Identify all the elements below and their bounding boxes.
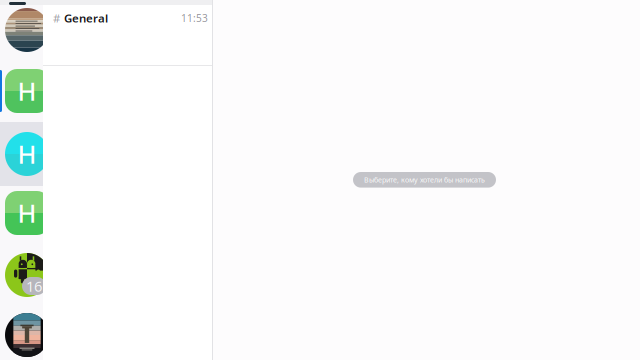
button[interactable]: Workspace H, selected [0,0,49,360]
staticText: 11:53 [181,11,208,25]
staticText: H [17,74,36,108]
staticText: H [17,137,36,171]
staticText: 16 [26,276,42,296]
button[interactable]: # [43,0,213,60]
button[interactable]: Workspace H green [0,0,49,360]
button[interactable]: Workspace H cyan [0,0,49,360]
button[interactable]: Android chat, 16 unread [0,0,49,360]
staticText: H [17,196,36,230]
button[interactable]: Saved messages account [0,0,49,360]
staticText: General [64,10,108,26]
button[interactable]: Account photo [0,0,49,360]
staticText: Выберите, кому хотели бы написать [364,175,485,185]
staticText: # [53,10,60,26]
